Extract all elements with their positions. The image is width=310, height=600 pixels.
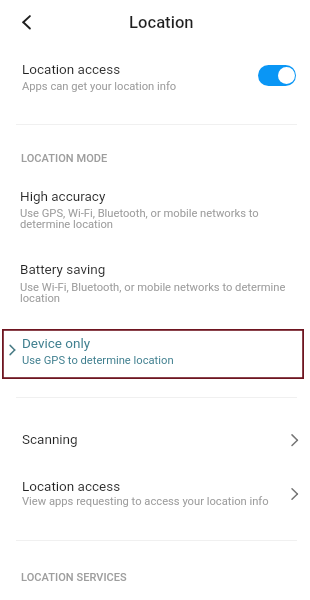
staticText: Battery saving — [20, 261, 106, 277]
staticText: determine location — [20, 218, 114, 231]
button[interactable]: Location access on — [258, 65, 296, 86]
staticText: Apps can get your location info — [22, 80, 177, 93]
staticText: Device only — [22, 335, 91, 351]
button[interactable]: Location access — [0, 48, 310, 106]
staticText: Scanning — [22, 431, 78, 447]
staticText: Location — [129, 13, 194, 32]
staticText: Location access — [22, 61, 121, 77]
staticText: Use Wi-Fi, Bluetooth, or mobile networks… — [20, 281, 286, 294]
staticText: location — [20, 292, 60, 305]
button[interactable]: Location access — [0, 470, 310, 520]
staticText: View apps requesting to access your loca… — [22, 495, 269, 508]
staticText: LOCATION MODE — [21, 152, 108, 165]
staticText: Use GPS to determine location — [22, 354, 174, 367]
button[interactable]: Navigate up — [4, 0, 48, 44]
button[interactable]: Battery saving — [0, 252, 310, 310]
button[interactable]: High accuracy — [0, 178, 310, 236]
staticText: Use GPS, Wi-Fi, Bluetooth, or mobile net… — [20, 207, 259, 220]
button[interactable]: Device only — [2, 329, 304, 379]
staticText: Location access — [22, 478, 121, 494]
button[interactable]: Scanning — [0, 420, 310, 462]
staticText: LOCATION SERVICES — [21, 571, 127, 584]
staticText: High accuracy — [20, 188, 106, 204]
